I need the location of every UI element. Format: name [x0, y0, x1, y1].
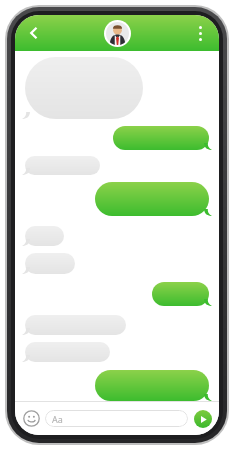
button[interactable]: Back — [21, 20, 47, 46]
button[interactable]: Contact profile — [103, 19, 131, 47]
button[interactable]: Insert emoji — [22, 409, 40, 427]
button[interactable] — [152, 282, 209, 306]
button[interactable]: Aa — [45, 410, 188, 427]
button[interactable] — [25, 226, 64, 246]
button[interactable] — [25, 253, 75, 274]
button[interactable]: More options — [187, 20, 213, 46]
staticText: Aa — [52, 413, 63, 425]
button[interactable] — [95, 370, 209, 401]
button[interactable] — [113, 126, 209, 150]
button[interactable] — [25, 57, 143, 119]
button[interactable] — [25, 342, 110, 362]
button[interactable] — [25, 156, 100, 175]
button[interactable] — [25, 315, 126, 335]
button[interactable]: Send message — [193, 409, 212, 428]
button[interactable] — [95, 182, 209, 216]
